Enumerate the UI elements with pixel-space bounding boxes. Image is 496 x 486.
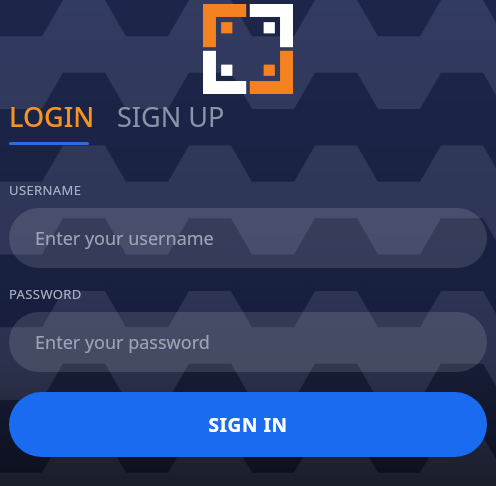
staticText: USERNAME	[9, 181, 82, 199]
staticText: SIGN IN	[208, 412, 288, 438]
staticText: LOGIN	[9, 98, 95, 135]
staticText: Enter your password	[35, 330, 210, 355]
button[interactable]: Enter your password	[9, 312, 487, 372]
staticText: SIGN UP	[117, 98, 225, 135]
button[interactable]: SIGN IN	[9, 392, 487, 457]
staticText: Enter your username	[35, 226, 214, 251]
button[interactable]: Enter your username	[9, 208, 487, 268]
staticText: PASSWORD	[9, 285, 82, 303]
button[interactable]: SIGN UP	[117, 98, 225, 145]
button[interactable]: LOGIN	[9, 98, 95, 145]
